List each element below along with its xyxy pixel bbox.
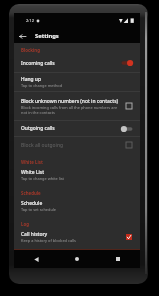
button[interactable]: White List	[14, 166, 140, 184]
staticText: Call history	[21, 231, 48, 238]
button[interactable]: Block all outgoing	[14, 137, 140, 153]
button[interactable]: Call history	[14, 228, 140, 246]
staticText: Schedule	[21, 200, 43, 207]
button[interactable]: Back	[30, 253, 42, 265]
staticText: Keep a history of blocked calls	[21, 238, 76, 243]
staticText: Block unknown numbers (not in contacts)	[21, 98, 119, 105]
button[interactable]: Block unknown numbers (not in contacts)	[14, 92, 140, 120]
staticText: Block incoming calls from all the phone …	[21, 105, 121, 115]
staticText: Hang up	[21, 76, 41, 83]
button[interactable]: Home	[71, 253, 83, 265]
staticText: Tap to change method	[21, 83, 63, 88]
staticText: Tap to set schedule	[21, 207, 57, 212]
staticText: Settings	[35, 32, 59, 40]
button[interactable]: Back	[16, 30, 28, 42]
button[interactable]: Outgoing calls	[14, 121, 140, 136]
button[interactable]: Hang up	[14, 73, 140, 91]
staticText: 2:12	[26, 18, 34, 23]
staticText: Incoming calls	[21, 60, 55, 67]
staticText: Outgoing calls	[21, 125, 55, 132]
button[interactable]: Unchecked	[124, 101, 134, 111]
staticText: Tap to change white list	[21, 176, 65, 181]
button[interactable]: Checked	[124, 232, 134, 242]
staticText: Blocking	[21, 47, 40, 53]
staticText: White List	[21, 159, 43, 165]
staticText: Schedule	[21, 190, 41, 196]
button[interactable]: Toggle off	[120, 124, 134, 134]
staticText: Block all outgoing	[21, 142, 63, 149]
button[interactable]: Unchecked	[124, 140, 134, 150]
button[interactable]: Incoming calls	[14, 54, 140, 72]
button[interactable]: Recents	[112, 253, 124, 265]
button[interactable]: Schedule	[14, 197, 140, 215]
button[interactable]: Toggle on	[120, 58, 134, 68]
staticText: Log	[21, 221, 29, 227]
staticText: White List	[21, 169, 45, 176]
